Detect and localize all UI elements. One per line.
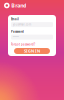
staticText: ••••••: [13, 35, 19, 39]
button[interactable]: SIGN IN: [14, 48, 50, 54]
button[interactable]: Forgot password?: [11, 43, 35, 46]
staticText: you@mail.com: [13, 23, 31, 26]
staticText: SIGN IN: [24, 48, 40, 54]
staticText: Forgot password?: [11, 43, 35, 46]
staticText: Password: [11, 30, 24, 33]
staticText: Brand: [11, 2, 26, 9]
staticText: Email: [11, 17, 19, 21]
